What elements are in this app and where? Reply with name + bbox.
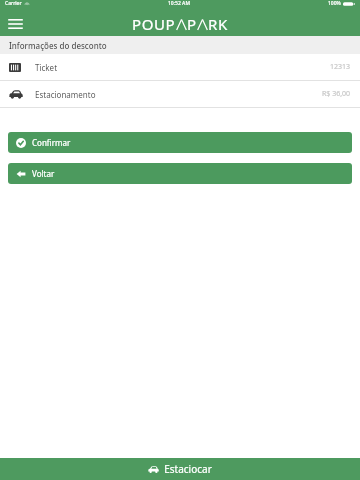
staticText: Ticket [35, 62, 58, 73]
staticText: Confirmar [32, 137, 71, 148]
staticText: Informações do desconto [9, 40, 107, 51]
staticText: POUP [132, 14, 176, 34]
button[interactable]: Confirmar [8, 132, 352, 153]
button[interactable]: Voltar [8, 163, 352, 184]
staticText: 100% [328, 0, 341, 7]
staticText: 12313 [330, 62, 351, 72]
staticText: Voltar [32, 168, 55, 179]
button[interactable]: Estaciocar [0, 458, 360, 480]
staticText: P [187, 14, 197, 34]
staticText: R$ 36,00 [322, 89, 351, 99]
staticText: Carrier [5, 0, 22, 7]
button[interactable]: Menu [4, 13, 26, 35]
staticText: 10:52 AM [168, 0, 190, 7]
staticText: Estacionamento [35, 89, 96, 100]
staticText: RK [208, 14, 228, 34]
button[interactable]: Ticket [0, 54, 360, 80]
button[interactable]: Estacionamento [0, 81, 360, 107]
staticText: Estaciocar [164, 462, 212, 476]
